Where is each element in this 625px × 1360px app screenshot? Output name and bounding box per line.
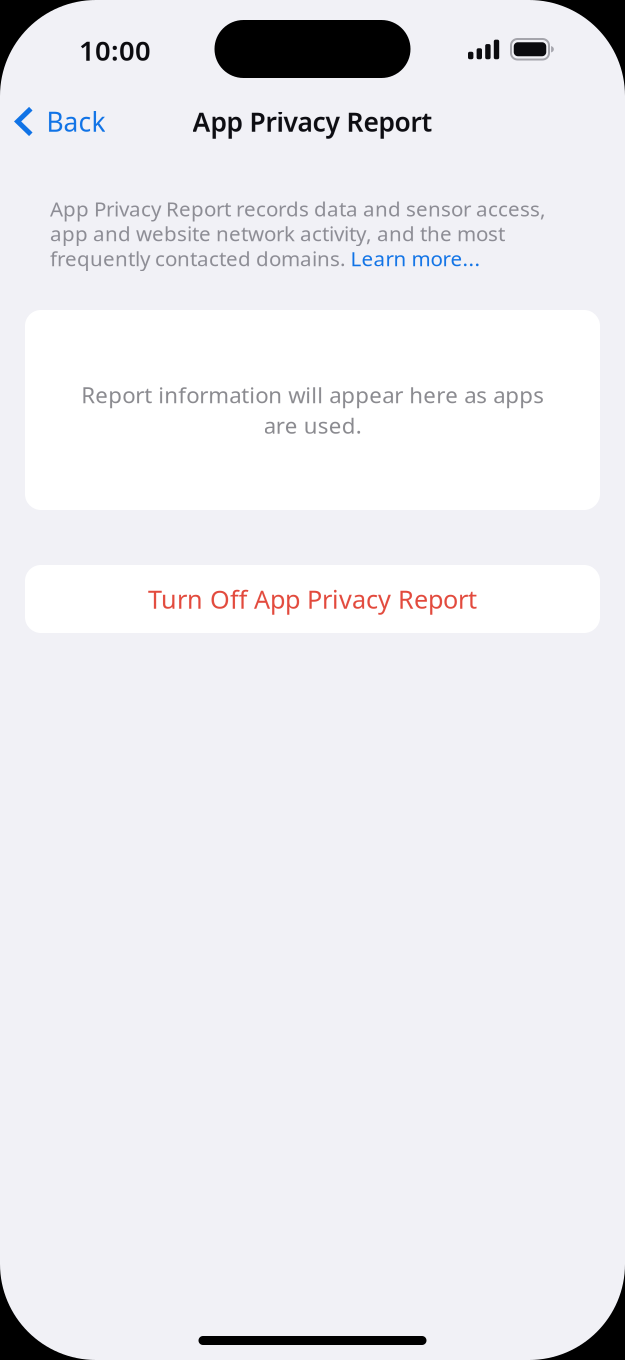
staticText: Back (46, 104, 105, 139)
staticText: Report information will appear here as a… (81, 380, 544, 440)
button[interactable]: Back (4, 95, 116, 148)
staticText: Turn Off App Privacy Report (148, 582, 477, 616)
button[interactable]: Learn more... (350, 244, 480, 272)
staticText: Learn more... (350, 244, 480, 272)
staticText: 10:00 (79, 32, 151, 68)
staticText: frequently contacted domains. (50, 244, 346, 272)
staticText: app and website network activity, and th… (50, 220, 505, 247)
staticText: App Privacy Report (192, 104, 432, 139)
staticText: App Privacy Report records data and sens… (50, 195, 546, 222)
button[interactable]: Turn Off App Privacy Report (25, 565, 600, 633)
